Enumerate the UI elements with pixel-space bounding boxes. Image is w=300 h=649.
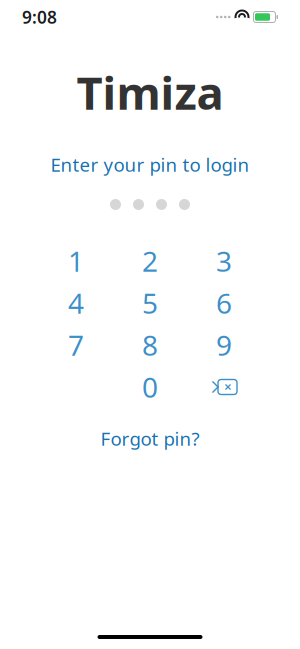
staticText: Timiza (76, 62, 223, 122)
staticText: 5 (142, 284, 158, 322)
staticText: 2 (142, 242, 158, 280)
staticText: 4 (68, 284, 84, 322)
staticText: Forgot pin? (100, 426, 199, 451)
button[interactable]: 9 (187, 324, 261, 366)
staticText: 8 (142, 326, 158, 364)
button[interactable]: Delete (187, 366, 261, 408)
staticText: 6 (216, 284, 232, 322)
staticText: 9:08 (22, 5, 57, 28)
staticText: 9 (216, 326, 232, 364)
button[interactable]: 8 (113, 324, 187, 366)
button[interactable]: 1 (39, 240, 113, 282)
button[interactable]: 0 (113, 366, 187, 408)
staticText: 1 (68, 242, 84, 280)
staticText: 0 (142, 368, 158, 406)
button[interactable]: 2 (113, 240, 187, 282)
staticText: 7 (68, 326, 84, 364)
button[interactable]: 4 (39, 282, 113, 324)
button[interactable]: 3 (187, 240, 261, 282)
button[interactable]: 7 (39, 324, 113, 366)
staticText: Enter your pin to login (50, 152, 249, 177)
button[interactable]: Forgot pin? (86, 420, 213, 457)
button[interactable]: 5 (113, 282, 187, 324)
button[interactable]: 6 (187, 282, 261, 324)
staticText: 3 (216, 242, 232, 280)
